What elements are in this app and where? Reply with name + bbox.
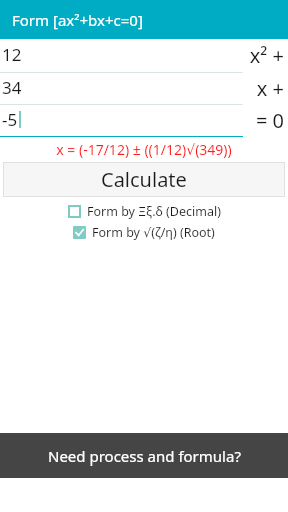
staticText: x² + xyxy=(249,42,284,69)
staticText: Form [ax²+bx+c=0] xyxy=(12,10,143,30)
staticText: Form by Ξξ.δ (Decimal) xyxy=(87,203,221,220)
staticText: -5 xyxy=(2,108,18,131)
staticText: Form by √(ζ/η) (Root) xyxy=(92,224,215,241)
button[interactable]: Form by √(ζ/η) (Root) xyxy=(73,222,215,242)
button[interactable]: Need process and formula? xyxy=(0,433,288,478)
staticText: 12 xyxy=(2,43,22,66)
button[interactable]: x² + xyxy=(0,39,288,73)
staticText: 34 xyxy=(2,76,22,99)
staticText: Need process and formula? xyxy=(48,446,241,466)
staticText: = 0 xyxy=(255,107,284,134)
button[interactable]: Form by Ξξ.δ (Decimal) xyxy=(68,201,221,221)
staticText: x = (-17/12) ± ((1/12)√(349)) xyxy=(56,140,232,159)
staticText: Calculate xyxy=(101,166,187,193)
button[interactable]: x + xyxy=(0,73,288,105)
staticText: x + xyxy=(256,75,284,102)
button[interactable]: Calculate xyxy=(3,162,285,197)
button[interactable]: = 0 xyxy=(0,105,288,137)
